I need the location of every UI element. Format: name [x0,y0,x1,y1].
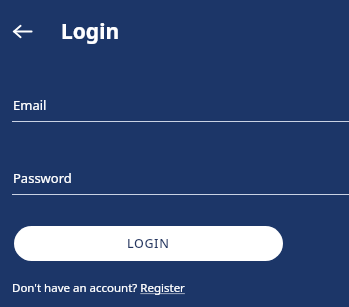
staticText: LOGIN [127,235,170,252]
button[interactable]: LOGIN [14,226,283,261]
staticText: Password [13,169,72,187]
staticText: Don't have an account? Register [12,280,185,296]
staticText: Email [13,96,47,114]
staticText: Login [61,17,120,46]
button[interactable]: Don't have an account? Register [12,280,185,296]
button[interactable]: Back [8,17,36,45]
